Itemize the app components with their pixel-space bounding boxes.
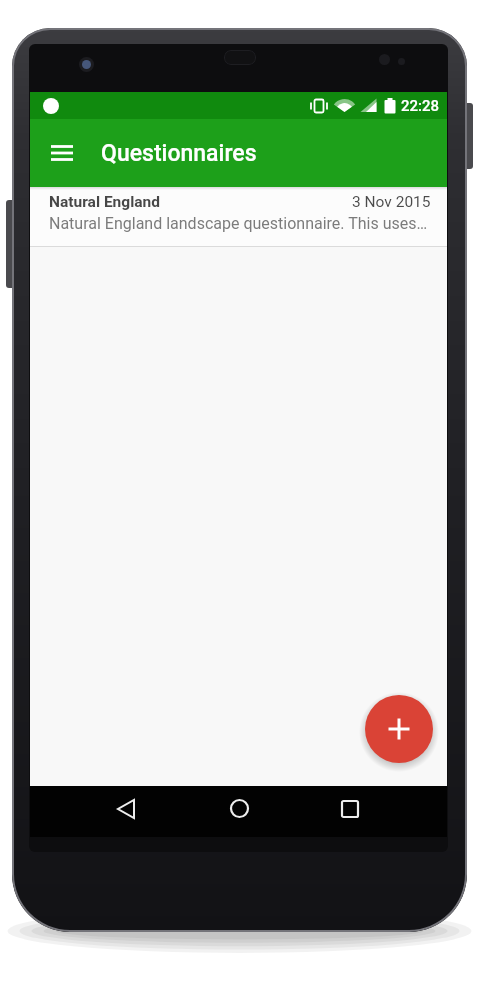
staticText: Natural England landscape questionnaire.… [49, 214, 431, 233]
button[interactable] [333, 787, 367, 830]
staticText: Questionnaires [101, 140, 257, 167]
button[interactable] [108, 787, 142, 830]
button[interactable]: Natural England [30, 187, 447, 246]
button[interactable] [365, 695, 433, 763]
button[interactable] [222, 787, 256, 830]
button[interactable] [45, 136, 79, 170]
staticText: Natural England [49, 193, 160, 211]
staticText: 22:28 [401, 97, 440, 115]
staticText: 3 Nov 2015 [352, 193, 431, 211]
